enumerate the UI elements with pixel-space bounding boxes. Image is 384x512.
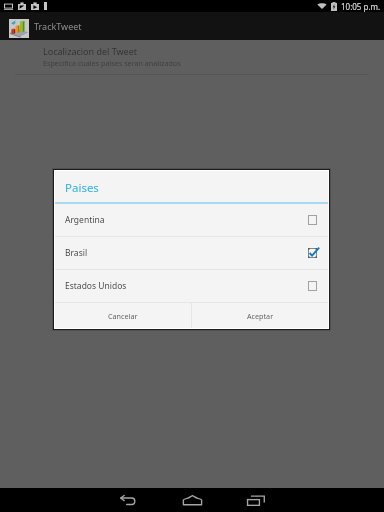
staticText: Argentina	[65, 214, 105, 226]
button[interactable]: Home	[160, 488, 224, 512]
staticText: 10:05 p.m.	[341, 1, 381, 12]
button[interactable]: Recents	[224, 488, 288, 512]
button[interactable]: Estados Unidos	[55, 270, 328, 302]
staticText: Aceptar	[247, 311, 274, 321]
staticText: Especifica cuales paises seran analizado…	[43, 58, 181, 68]
button[interactable]: Argentina	[55, 204, 328, 236]
staticText: TrackTweet	[34, 20, 82, 32]
staticText: Cancelar	[108, 311, 138, 321]
button[interactable]: Localizacion del Tweet	[0, 40, 384, 74]
button[interactable]: Aceptar	[192, 303, 328, 328]
staticText: Estados Unidos	[65, 280, 127, 292]
staticText: Localizacion del Tweet	[43, 45, 138, 57]
staticText: Paises	[65, 180, 99, 196]
button[interactable]: Brasil	[55, 237, 328, 269]
button[interactable]: Cancelar	[55, 303, 191, 328]
staticText: Brasil	[65, 247, 88, 259]
button[interactable]: Back	[96, 488, 160, 512]
